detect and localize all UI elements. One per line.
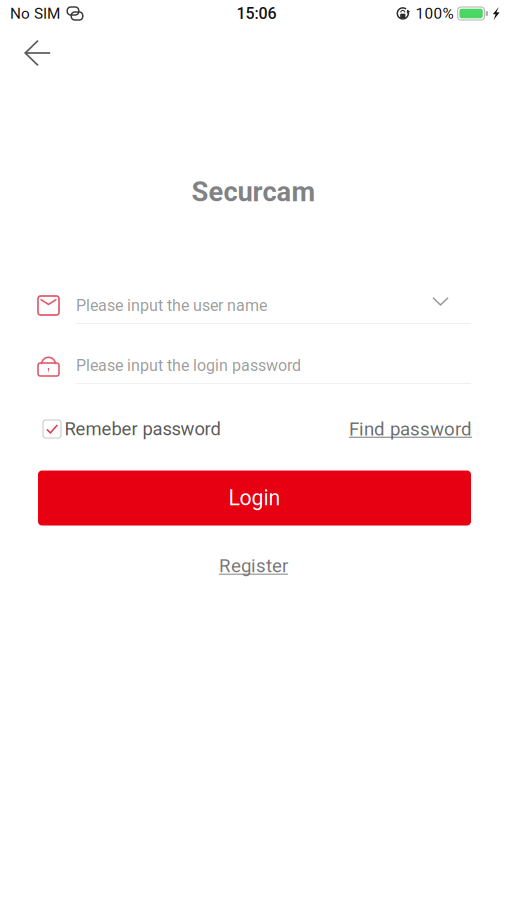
staticText: Find password — [349, 418, 472, 440]
staticText: Login — [228, 485, 280, 510]
staticText: 100% — [416, 4, 454, 22]
button[interactable]: Back — [0, 26, 65, 71]
button[interactable]: Please input the user name — [38, 292, 471, 319]
button[interactable]: Register — [219, 555, 288, 577]
staticText: Please input the login password — [76, 356, 301, 375]
button[interactable]: Please input the login password — [38, 352, 471, 379]
staticText: Please input the user name — [76, 296, 267, 315]
button[interactable]: Remeber password — [43, 418, 220, 440]
staticText: Securcam — [191, 176, 315, 208]
button[interactable]: Login — [38, 470, 471, 525]
button[interactable]: Find password — [349, 418, 472, 440]
staticText: Register — [219, 555, 288, 577]
staticText: 15:06 — [236, 4, 276, 23]
staticText: Remeber password — [64, 418, 220, 440]
staticText: No SIM — [10, 4, 60, 22]
